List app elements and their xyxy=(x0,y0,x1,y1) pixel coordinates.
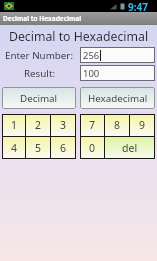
staticText: 6 xyxy=(60,141,67,155)
button[interactable]: 5 xyxy=(26,137,51,159)
staticText: Decimal to Hexadecimal xyxy=(3,14,82,23)
button[interactable]: 4 xyxy=(2,137,26,159)
button[interactable]: 1 xyxy=(2,114,26,136)
button[interactable]: Hexadecimal xyxy=(80,87,155,109)
staticText: Decimal to Hexadecimal xyxy=(0,28,157,45)
staticText: 256 xyxy=(83,49,100,62)
button[interactable]: 0 xyxy=(80,137,105,159)
staticText: Result: xyxy=(24,67,56,80)
button[interactable]: 256 xyxy=(80,47,155,63)
staticText: 3 xyxy=(60,118,67,132)
staticText: 2 xyxy=(35,118,42,132)
staticText: 5 xyxy=(35,141,42,155)
button[interactable]: 8 xyxy=(105,114,130,136)
staticText: 100 xyxy=(83,67,100,80)
staticText: 9 xyxy=(139,118,146,132)
staticText: 0 xyxy=(89,141,96,155)
button[interactable]: 2 xyxy=(26,114,51,136)
staticText: Enter Number: xyxy=(5,49,74,62)
staticText: 9:47 xyxy=(128,0,148,12)
staticText: 4 xyxy=(11,141,18,155)
button[interactable]: Decimal xyxy=(2,87,76,109)
button[interactable]: 6 xyxy=(51,137,76,159)
button[interactable]: 7 xyxy=(80,114,105,136)
button[interactable]: 100 xyxy=(80,65,155,81)
button[interactable]: 9 xyxy=(130,114,155,136)
staticText: 1 xyxy=(11,118,18,132)
staticText: Hexadecimal xyxy=(88,92,148,105)
button[interactable]: del xyxy=(105,137,155,159)
staticText: 8 xyxy=(114,118,121,132)
staticText: 7 xyxy=(89,118,96,132)
staticText: Decimal xyxy=(20,92,58,105)
button[interactable]: 3 xyxy=(51,114,76,136)
staticText: del xyxy=(122,141,138,155)
